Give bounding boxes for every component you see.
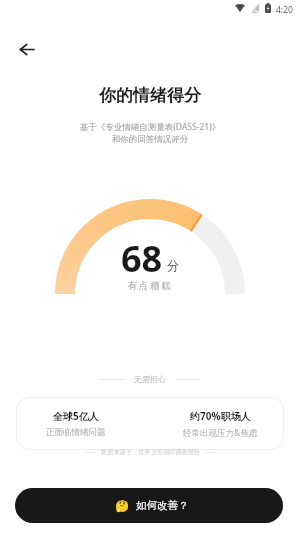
staticText: 无需担心 bbox=[134, 374, 166, 384]
staticText: 4:20 bbox=[276, 4, 293, 16]
staticText: 你的情绪得分 bbox=[0, 85, 300, 106]
button[interactable]: 🤔 bbox=[15, 488, 283, 523]
staticText: 如何改善？ bbox=[136, 499, 189, 512]
staticText: 有点糟糕 bbox=[0, 280, 300, 292]
staticText: 分 bbox=[167, 258, 180, 274]
staticText: 全球5亿人 bbox=[53, 409, 99, 423]
staticText: 经常出现压力&焦虑 bbox=[183, 427, 258, 439]
button[interactable]: Back bbox=[10, 32, 44, 66]
staticText: 68 bbox=[121, 234, 163, 283]
staticText: 正面临情绪问题 bbox=[46, 427, 106, 438]
button[interactable]: 全球5亿人 bbox=[16, 397, 284, 450]
staticText: 数据来源于：世界卫生组织调查报告 bbox=[101, 448, 200, 456]
staticText: 基于《专业情绪自测量表(DASS-21)》 和你的回答情况评分 bbox=[0, 121, 300, 145]
staticText: 🤔 bbox=[115, 499, 130, 512]
staticText: 约70%职场人 bbox=[190, 409, 251, 423]
